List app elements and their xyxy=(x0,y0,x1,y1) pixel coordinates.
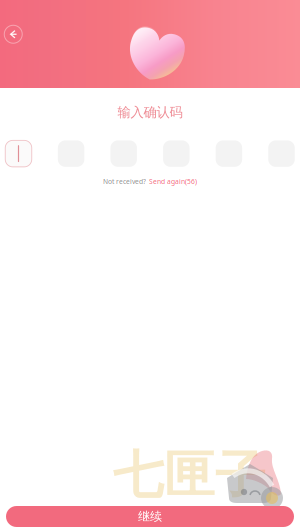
button[interactable]: Back xyxy=(0,21,26,47)
staticText: 继续 xyxy=(138,509,162,524)
staticText: Send again(56) xyxy=(149,177,197,186)
button[interactable]: Send again(56) xyxy=(149,177,197,186)
staticText: 输入确认码 xyxy=(117,104,182,120)
staticText: 七匣子 xyxy=(113,444,266,507)
button[interactable]: 继续 xyxy=(6,506,294,527)
staticText: Not received? xyxy=(103,177,146,186)
